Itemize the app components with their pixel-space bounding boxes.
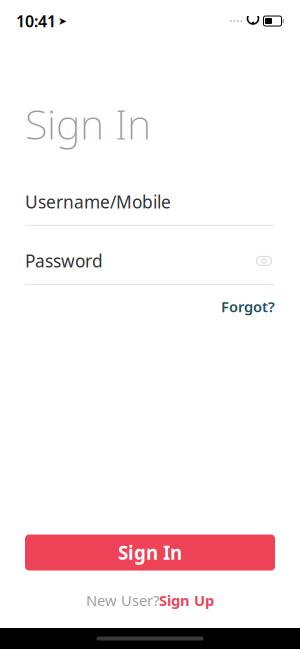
staticText: Forgot?	[221, 297, 275, 316]
button[interactable]: Show password	[253, 253, 275, 269]
staticText: ➤	[58, 15, 67, 27]
staticText: Sign Up	[159, 590, 214, 610]
staticText: Sign In	[118, 540, 182, 565]
staticText: Username/Mobile	[25, 190, 171, 213]
button[interactable]: Sign In	[25, 534, 275, 570]
staticText: 10:41	[16, 10, 56, 32]
staticText: Sign In	[25, 96, 151, 151]
staticText: Password	[25, 249, 103, 272]
staticText: New User?	[86, 590, 159, 610]
button[interactable]: Forgot?	[221, 297, 275, 316]
button[interactable]: New User?	[0, 584, 300, 616]
